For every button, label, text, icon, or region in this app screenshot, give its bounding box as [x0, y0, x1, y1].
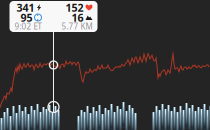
staticText: 16: [71, 10, 83, 25]
staticText: 5.77 KM: [61, 21, 92, 32]
staticText: 152: [65, 0, 83, 15]
staticText: 95: [20, 10, 32, 25]
staticText: 9:02 ET: [14, 21, 41, 32]
staticText: 341: [16, 0, 34, 15]
